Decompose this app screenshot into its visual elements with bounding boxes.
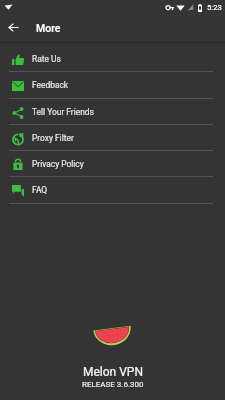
staticText: FAQ	[32, 185, 48, 195]
staticText: Privacy Policy	[32, 159, 84, 169]
staticText: Proxy Filter	[32, 133, 74, 143]
button[interactable]: Back	[0, 14, 27, 41]
staticText: More	[36, 22, 61, 34]
staticText: Tell Your Friends	[32, 107, 94, 117]
button[interactable]: Feedback	[0, 72, 225, 98]
button[interactable]: FAQ	[0, 177, 225, 203]
button[interactable]: Proxy Filter	[0, 125, 225, 151]
staticText: Rate Us	[32, 54, 61, 64]
button[interactable]: Tell Your Friends	[0, 99, 225, 125]
button[interactable]: Privacy Policy	[0, 151, 225, 177]
staticText: 5:23	[207, 3, 222, 12]
staticText: RELEASE 3.6.300	[82, 380, 144, 389]
staticText: Feedback	[32, 80, 69, 90]
button[interactable]: Rate Us	[0, 46, 225, 72]
staticText: Melon VPN	[83, 365, 143, 379]
